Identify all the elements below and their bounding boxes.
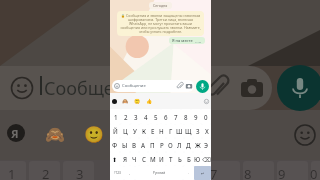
button[interactable]: ?123: [110, 166, 124, 180]
staticText: А: [141, 141, 146, 149]
staticText: Ч: [132, 155, 137, 163]
button[interactable]: 9: [191, 109, 201, 124]
staticText: 9: [278, 165, 286, 180]
staticText: Сегодня: [153, 3, 168, 8]
button[interactable]: Ц: [120, 124, 130, 138]
button[interactable]: У: [130, 124, 139, 138]
button[interactable]: 6: [161, 109, 171, 124]
staticText: У: [133, 127, 137, 135]
staticText: Д: [186, 141, 191, 149]
staticText: 9: [194, 113, 198, 121]
button[interactable]: Ы: [120, 138, 130, 152]
button[interactable]: Yandex: [112, 99, 117, 104]
staticText: Н: [159, 127, 164, 135]
button[interactable]: 1: [110, 109, 121, 124]
button[interactable]: О: [166, 138, 175, 152]
staticText: 1: [8, 165, 16, 180]
staticText: 5: [154, 113, 158, 121]
button[interactable]: Enter: [194, 166, 211, 180]
button[interactable]: Ю: [193, 152, 202, 166]
staticText: 1: [114, 113, 118, 121]
staticText: Ш: [176, 127, 183, 135]
staticText: Я на месте: [172, 38, 193, 43]
button[interactable]: В: [130, 138, 139, 152]
button[interactable]: 🔒 Сообщения и звонки защищены сквозным ш…: [117, 11, 204, 36]
staticText: 0: [204, 113, 208, 121]
staticText: Ф: [112, 141, 118, 149]
staticText: ⌫: [202, 156, 211, 163]
staticText: 🙂: [84, 125, 104, 144]
button[interactable]: К: [139, 124, 148, 138]
staticText: В: [132, 141, 137, 149]
staticText: И: [159, 155, 164, 163]
button[interactable]: 0: [201, 109, 211, 124]
staticText: З: [196, 127, 200, 135]
button[interactable]: П: [148, 138, 157, 152]
button[interactable]: Я на месте: [169, 37, 205, 44]
staticText: Т: [169, 155, 173, 163]
button[interactable]: Щ: [184, 124, 193, 138]
button[interactable]: Ф: [110, 138, 120, 152]
staticText: Л: [177, 141, 182, 149]
button[interactable]: З: [193, 124, 202, 138]
button[interactable]: Ш: [175, 124, 184, 138]
staticText: Е: [151, 127, 155, 135]
button[interactable]: Е: [148, 124, 157, 138]
button[interactable]: А: [139, 138, 148, 152]
button[interactable]: Э: [202, 138, 211, 152]
staticText: Щ: [185, 127, 192, 135]
button[interactable]: Я: [120, 152, 130, 166]
button[interactable]: Б: [184, 152, 193, 166]
button[interactable]: Р: [157, 138, 166, 152]
staticText: 7: [210, 165, 218, 180]
button[interactable]: 3: [131, 109, 141, 124]
staticText: Х: [205, 127, 209, 135]
staticText: Ц: [123, 127, 128, 135]
staticText: 6: [164, 113, 168, 121]
staticText: О: [168, 141, 173, 149]
staticText: Сообщение: [122, 83, 146, 89]
button[interactable]: Л: [175, 138, 184, 152]
button[interactable]: ⌫: [202, 152, 211, 166]
staticText: Ь: [178, 155, 182, 163]
staticText: ↵: [201, 171, 205, 176]
staticText: ⬆: [112, 156, 118, 163]
button[interactable]: И: [157, 152, 166, 166]
button[interactable]: Н: [157, 124, 166, 138]
button[interactable]: Close: [204, 99, 209, 104]
button[interactable]: Ж: [193, 138, 202, 152]
staticText: Русский: [153, 171, 166, 175]
staticText: Сообщен: [44, 76, 125, 101]
button[interactable]: 5: [151, 109, 161, 124]
button[interactable]: Ь: [175, 152, 184, 166]
button[interactable]: Й: [110, 124, 120, 138]
button[interactable]: Ч: [130, 152, 139, 166]
button[interactable]: Г: [166, 124, 175, 138]
button[interactable]: 2: [121, 109, 131, 124]
button[interactable]: 4: [141, 109, 151, 124]
button[interactable]: Record voice message: [196, 80, 209, 93]
staticText: Ы: [122, 141, 128, 149]
button[interactable]: М: [148, 152, 157, 166]
button[interactable]: С: [139, 152, 148, 166]
staticText: Й: [113, 127, 118, 135]
staticText: Ю: [194, 155, 201, 163]
staticText: П: [150, 141, 155, 149]
button[interactable]: 8: [181, 109, 191, 124]
staticText: Э: [204, 141, 209, 149]
button[interactable]: Т: [166, 152, 175, 166]
button[interactable]: ⬆: [110, 152, 120, 166]
staticText: 🙂: [134, 98, 141, 104]
button[interactable]: 7: [171, 109, 181, 124]
staticText: Г: [169, 127, 173, 135]
button[interactable]: Х: [202, 124, 211, 138]
staticText: 7: [174, 113, 178, 121]
button[interactable]: Русский: [135, 166, 183, 180]
button[interactable]: Сообщение: [112, 80, 194, 92]
staticText: 0: [310, 165, 318, 180]
button[interactable]: Д: [184, 138, 193, 152]
button[interactable]: ,: [124, 166, 135, 180]
staticText: 8: [184, 113, 188, 121]
staticText: Ж: [195, 141, 201, 149]
